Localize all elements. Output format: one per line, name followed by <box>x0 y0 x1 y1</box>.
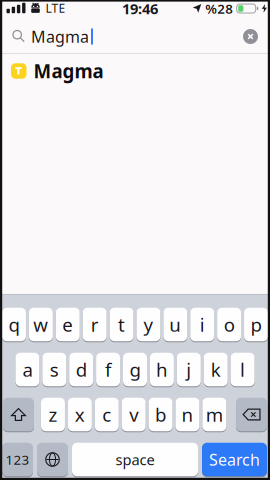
staticText: 123 <box>5 451 29 468</box>
button[interactable]: e <box>56 307 80 342</box>
button[interactable]: Magma <box>0 19 270 54</box>
staticText: %28 <box>205 0 233 17</box>
button[interactable]: Clear text <box>243 29 258 44</box>
staticText: c <box>102 402 111 427</box>
staticText: b <box>155 402 166 427</box>
staticText: g <box>129 357 140 382</box>
staticText: m <box>206 402 223 427</box>
button[interactable]: s <box>42 352 66 387</box>
button[interactable]: r <box>83 307 107 342</box>
staticText: h <box>156 357 168 382</box>
button[interactable]: h <box>150 352 174 387</box>
button[interactable]: p <box>244 307 268 342</box>
staticText: Magma <box>33 59 103 83</box>
button[interactable]: n <box>175 397 199 432</box>
button[interactable]: m <box>202 397 226 432</box>
staticText: Magma <box>31 26 89 47</box>
button[interactable]: j <box>177 352 201 387</box>
button[interactable]: t <box>109 307 133 342</box>
button[interactable]: k <box>204 352 228 387</box>
staticText: f <box>105 357 111 382</box>
staticText: v <box>129 402 138 427</box>
button[interactable]: w <box>29 307 53 342</box>
button[interactable]: f <box>96 352 120 387</box>
button[interactable]: g <box>123 352 147 387</box>
staticText: 19:46 <box>122 0 158 18</box>
button[interactable]: b <box>148 397 172 432</box>
staticText: e <box>62 312 73 337</box>
button[interactable]: a <box>15 352 39 387</box>
staticText: p <box>251 312 262 337</box>
button[interactable]: Shift <box>3 397 34 432</box>
button[interactable]: x <box>68 397 92 432</box>
button[interactable]: Next keyboard <box>37 442 68 477</box>
button[interactable]: q <box>2 307 26 342</box>
staticText: Search <box>209 449 260 470</box>
staticText: q <box>8 312 19 337</box>
staticText: d <box>76 357 87 382</box>
staticText: z <box>48 402 57 427</box>
staticText: l <box>240 357 245 382</box>
staticText: r <box>91 312 99 337</box>
staticText: o <box>224 312 235 337</box>
staticText: n <box>181 402 193 427</box>
button[interactable]: c <box>95 397 119 432</box>
staticText: k <box>211 357 221 382</box>
staticText: t <box>118 312 125 337</box>
staticText: LTE <box>45 0 65 16</box>
button[interactable]: o <box>217 307 241 342</box>
staticText: w <box>33 312 48 337</box>
button[interactable]: y <box>136 307 160 342</box>
staticText: s <box>50 357 59 382</box>
staticText: x <box>75 402 85 427</box>
staticText: j <box>186 357 191 382</box>
button[interactable]: i <box>190 307 214 342</box>
button[interactable]: Search <box>202 442 267 477</box>
staticText: space <box>115 450 154 469</box>
button[interactable]: 123 <box>2 442 33 477</box>
button[interactable]: Delete <box>236 397 267 432</box>
button[interactable]: Magma <box>0 54 270 88</box>
staticText: a <box>22 357 32 382</box>
staticText: i <box>200 312 205 337</box>
button[interactable]: l <box>231 352 255 387</box>
button[interactable]: z <box>41 397 65 432</box>
button[interactable]: u <box>163 307 187 342</box>
button[interactable]: d <box>69 352 93 387</box>
button[interactable]: v <box>122 397 146 432</box>
staticText: u <box>169 312 181 337</box>
staticText: y <box>143 312 153 337</box>
button[interactable]: space <box>72 442 198 477</box>
